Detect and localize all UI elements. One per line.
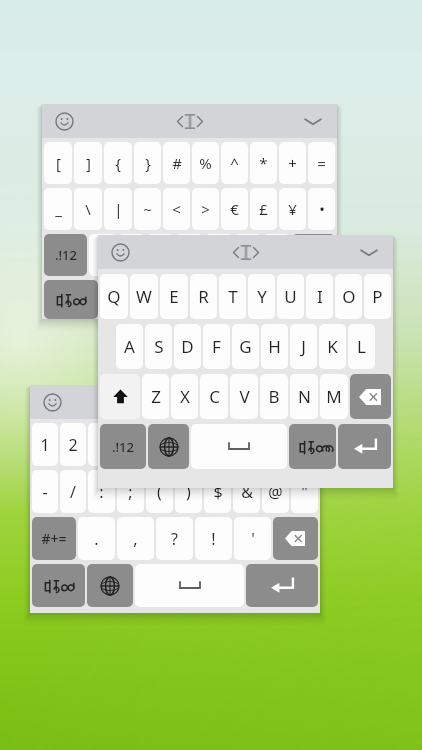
button[interactable]: Shift xyxy=(100,374,140,419)
button[interactable]: 2 xyxy=(60,423,86,466)
button[interactable]: " xyxy=(291,470,318,513)
button[interactable]: E xyxy=(160,274,188,319)
button[interactable]: L xyxy=(348,324,375,369)
button[interactable]: Y xyxy=(248,274,275,319)
button[interactable] xyxy=(263,234,290,276)
button[interactable]: $ xyxy=(204,470,231,513)
button[interactable]: # xyxy=(163,142,190,184)
button[interactable]: ) xyxy=(175,470,202,513)
button[interactable]: ^ xyxy=(221,142,248,184)
button[interactable]: #+= xyxy=(32,517,76,560)
button[interactable]: Backspace xyxy=(292,234,335,276)
button[interactable]: .!12 xyxy=(44,234,87,276)
button[interactable]: Backspace xyxy=(273,517,318,560)
button[interactable] xyxy=(147,234,174,276)
button[interactable]: 1 xyxy=(32,423,58,466)
button[interactable]: Move cursor xyxy=(155,389,195,415)
button[interactable]: D xyxy=(174,324,201,369)
button[interactable]: Emoji xyxy=(107,239,133,265)
button[interactable]: < xyxy=(163,188,190,230)
button[interactable]: J xyxy=(290,324,317,369)
button[interactable]: ? xyxy=(156,517,193,560)
button[interactable]: Emoji xyxy=(39,389,65,415)
button[interactable]: ; xyxy=(117,470,144,513)
button[interactable]: | xyxy=(104,188,132,230)
button[interactable]: Enter xyxy=(262,280,335,319)
button[interactable]: N xyxy=(290,374,318,419)
button[interactable]: € xyxy=(221,188,248,230)
button[interactable]: Z xyxy=(142,374,169,419)
button[interactable]: X xyxy=(171,374,198,419)
button[interactable]: B xyxy=(260,374,288,419)
button[interactable]: + xyxy=(279,142,306,184)
button[interactable]: V xyxy=(230,374,258,419)
button[interactable]: A xyxy=(116,324,143,369)
button[interactable]: @ xyxy=(262,470,289,513)
button[interactable]: .!12 xyxy=(100,424,146,469)
button[interactable]: Myanmar language xyxy=(289,424,336,469)
button[interactable]: M xyxy=(320,374,348,419)
button[interactable]: ~ xyxy=(134,188,161,230)
button[interactable]: Space xyxy=(135,564,244,607)
button[interactable] xyxy=(118,234,145,276)
button[interactable]: Myanmar language xyxy=(32,564,85,607)
button[interactable]: Space xyxy=(191,424,287,469)
button[interactable]: [ xyxy=(44,142,72,184)
button[interactable]: : xyxy=(88,470,115,513)
button[interactable]: { xyxy=(104,142,132,184)
button[interactable]: 3 xyxy=(88,423,115,466)
button[interactable]: Change language xyxy=(87,564,133,607)
button[interactable]: ! xyxy=(195,517,232,560)
button[interactable] xyxy=(176,234,203,276)
button[interactable]: 4 xyxy=(117,423,144,466)
button[interactable]: , xyxy=(117,517,154,560)
button[interactable]: / xyxy=(60,470,86,513)
button[interactable]: = xyxy=(308,142,335,184)
button[interactable]: O xyxy=(335,274,362,319)
button[interactable]: 0 xyxy=(291,423,318,466)
button[interactable]: . xyxy=(78,517,115,560)
button[interactable]: F xyxy=(203,324,230,369)
button[interactable]: £ xyxy=(250,188,277,230)
button[interactable]: & xyxy=(233,470,260,513)
button[interactable]: Change language xyxy=(148,424,189,469)
button[interactable]: } xyxy=(134,142,161,184)
button[interactable]: P xyxy=(364,274,391,319)
button[interactable]: 9 xyxy=(262,423,289,466)
button[interactable]: K xyxy=(319,324,346,369)
button[interactable]: Move cursor xyxy=(170,108,210,134)
button[interactable]: W xyxy=(130,274,158,319)
button[interactable]: Enter xyxy=(246,564,318,607)
button[interactable]: R xyxy=(190,274,217,319)
button[interactable]: S xyxy=(145,324,172,369)
button[interactable]: \ xyxy=(74,188,102,230)
button[interactable]: Enter xyxy=(338,424,391,469)
button[interactable]: ' xyxy=(234,517,271,560)
button[interactable]: 7 xyxy=(204,423,231,466)
button[interactable]: * xyxy=(250,142,277,184)
button[interactable] xyxy=(89,234,116,276)
button[interactable]: Move cursor xyxy=(226,239,266,265)
button[interactable]: ¥ xyxy=(279,188,306,230)
button[interactable]: H xyxy=(261,324,288,369)
button[interactable]: % xyxy=(192,142,219,184)
button[interactable]: ( xyxy=(146,470,173,513)
button[interactable]: Myanmar language xyxy=(44,280,98,319)
button[interactable]: Space xyxy=(149,280,260,319)
button[interactable]: Change language xyxy=(100,280,147,319)
button[interactable]: 5 xyxy=(146,423,173,466)
button[interactable] xyxy=(205,234,232,276)
button[interactable] xyxy=(234,234,261,276)
button[interactable]: Hide keyboard xyxy=(355,240,383,264)
button[interactable]: • xyxy=(308,188,335,230)
button[interactable]: Hide keyboard xyxy=(299,109,327,133)
button[interactable]: - xyxy=(32,470,58,513)
button[interactable]: U xyxy=(277,274,304,319)
button[interactable]: Backspace xyxy=(350,374,391,419)
button[interactable]: Q xyxy=(100,274,128,319)
button[interactable]: ] xyxy=(74,142,102,184)
button[interactable]: Emoji xyxy=(51,108,77,134)
button[interactable]: 6 xyxy=(175,423,202,466)
button[interactable]: T xyxy=(219,274,246,319)
button[interactable]: > xyxy=(192,188,219,230)
